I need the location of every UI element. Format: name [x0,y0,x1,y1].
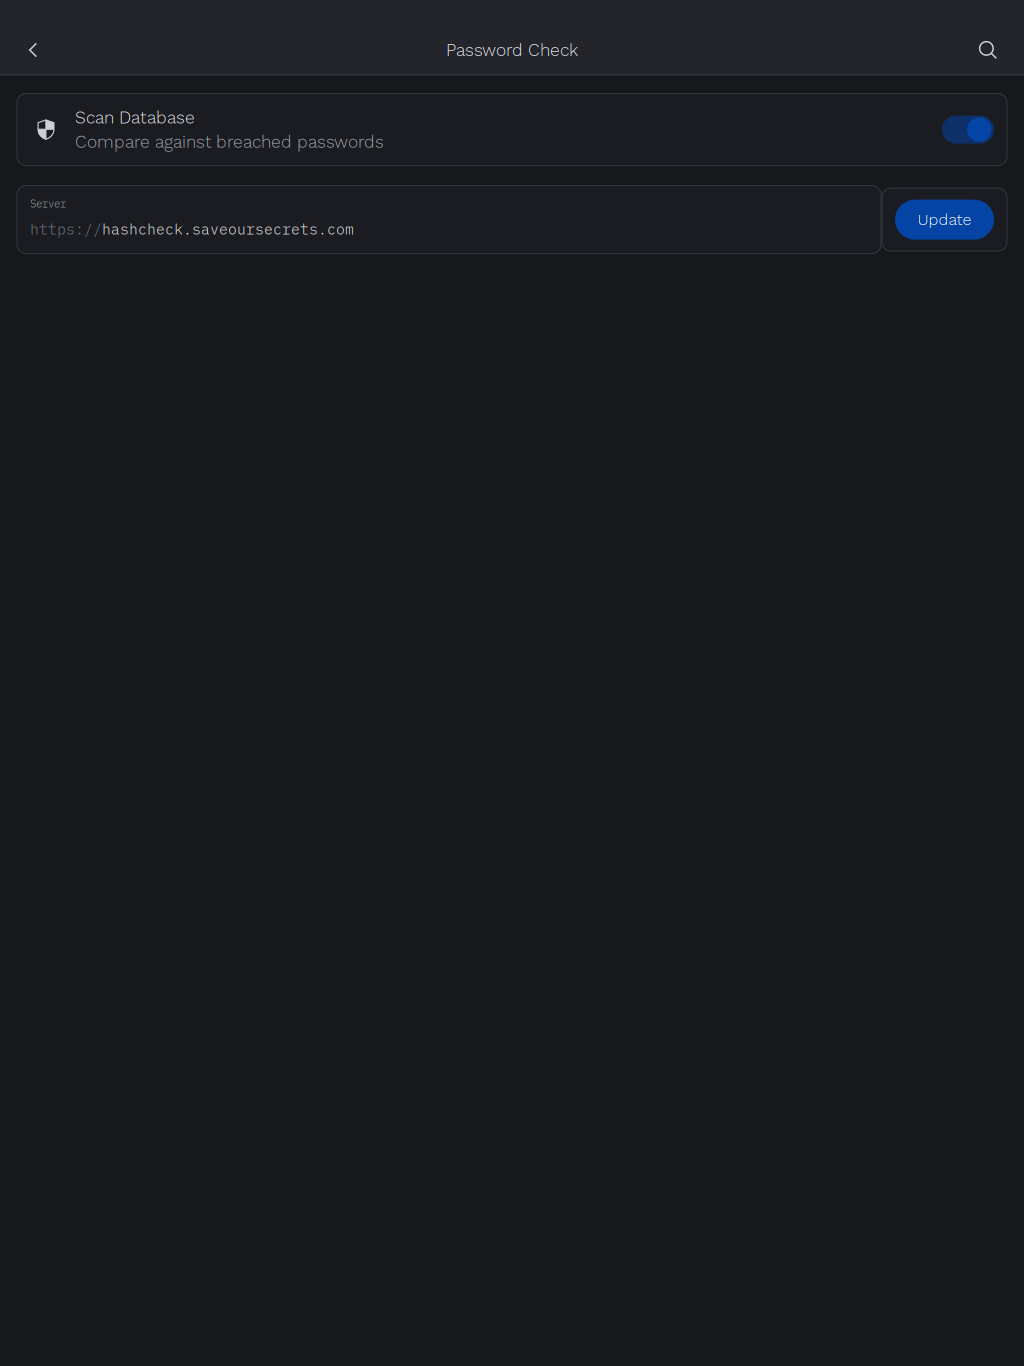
staticText: Update [917,210,971,229]
staticText: Scan Database [75,107,195,128]
staticText: https:// [30,219,102,239]
button[interactable]: Update [882,188,1007,251]
staticText: Compare against breached passwords [75,132,384,152]
button[interactable]: Scan Database [17,94,1007,166]
staticText: Password Check [446,40,578,60]
button[interactable]: Back [10,27,56,73]
staticText: Server [30,197,66,210]
button[interactable]: Search [965,27,1011,73]
staticText: hashcheck.saveoursecrets.com [102,219,354,239]
